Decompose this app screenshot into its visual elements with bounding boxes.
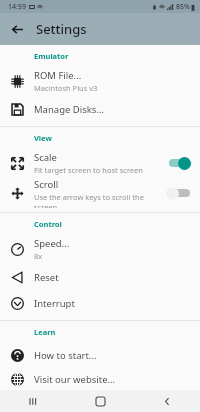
staticText: 85% xyxy=(176,2,190,12)
staticText: Fit target screen to host screen xyxy=(34,165,143,175)
staticText: Scale xyxy=(34,151,57,164)
button[interactable]: Back xyxy=(4,16,30,42)
staticText: Interrupt xyxy=(34,297,75,310)
staticText: Reset xyxy=(34,271,59,284)
button[interactable]: Speed... xyxy=(0,234,200,264)
button[interactable]: How to start... xyxy=(0,342,200,368)
staticText: Macintosh Plus v3 xyxy=(34,83,98,93)
button[interactable]: Interrupt xyxy=(0,290,200,316)
staticText: Visit our website... xyxy=(34,373,116,386)
staticText: 8x xyxy=(34,251,43,261)
button[interactable]: Recents xyxy=(22,390,44,412)
button[interactable]: Manage Disks... xyxy=(0,96,200,122)
staticText: Use the arrow keys to scroll the screen xyxy=(34,192,166,208)
button[interactable]: Reset xyxy=(0,264,200,290)
staticText: ROM File... xyxy=(34,69,82,82)
button[interactable]: Scale toggle on xyxy=(166,156,192,170)
button[interactable]: ROM File... xyxy=(0,66,200,96)
button[interactable]: Visit our website... xyxy=(0,368,200,390)
staticText: How to start... xyxy=(34,349,97,362)
staticText: Scroll xyxy=(34,178,59,191)
staticText: Manage Disks... xyxy=(34,103,105,116)
button[interactable]: Home xyxy=(89,390,111,412)
button[interactable]: Back xyxy=(156,390,178,412)
staticText: 14:59 xyxy=(8,2,26,12)
staticText: View xyxy=(34,133,52,143)
button[interactable]: Scroll xyxy=(0,178,200,208)
staticText: Control xyxy=(34,219,62,229)
button[interactable]: Scale xyxy=(0,148,200,178)
staticText: Emulator xyxy=(34,51,69,61)
staticText: Settings xyxy=(36,20,87,38)
staticText: Learn xyxy=(34,327,56,337)
staticText: Speed... xyxy=(34,237,70,250)
button[interactable]: Scroll toggle off xyxy=(166,186,192,200)
